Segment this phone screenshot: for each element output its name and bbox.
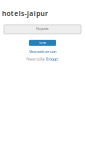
- staticText: Home: [38, 41, 46, 45]
- button[interactable]: Home: [29, 40, 56, 46]
- button[interactable]: Blogger: [46, 56, 59, 61]
- staticText: Powered by: [26, 56, 45, 61]
- button[interactable]: View web version: [29, 49, 56, 54]
- staticText: hotels-jaipur: [2, 9, 48, 18]
- staticText: View web version: [29, 49, 56, 54]
- staticText: Blogger: [46, 56, 59, 61]
- staticText: No posts.: [36, 26, 49, 31]
